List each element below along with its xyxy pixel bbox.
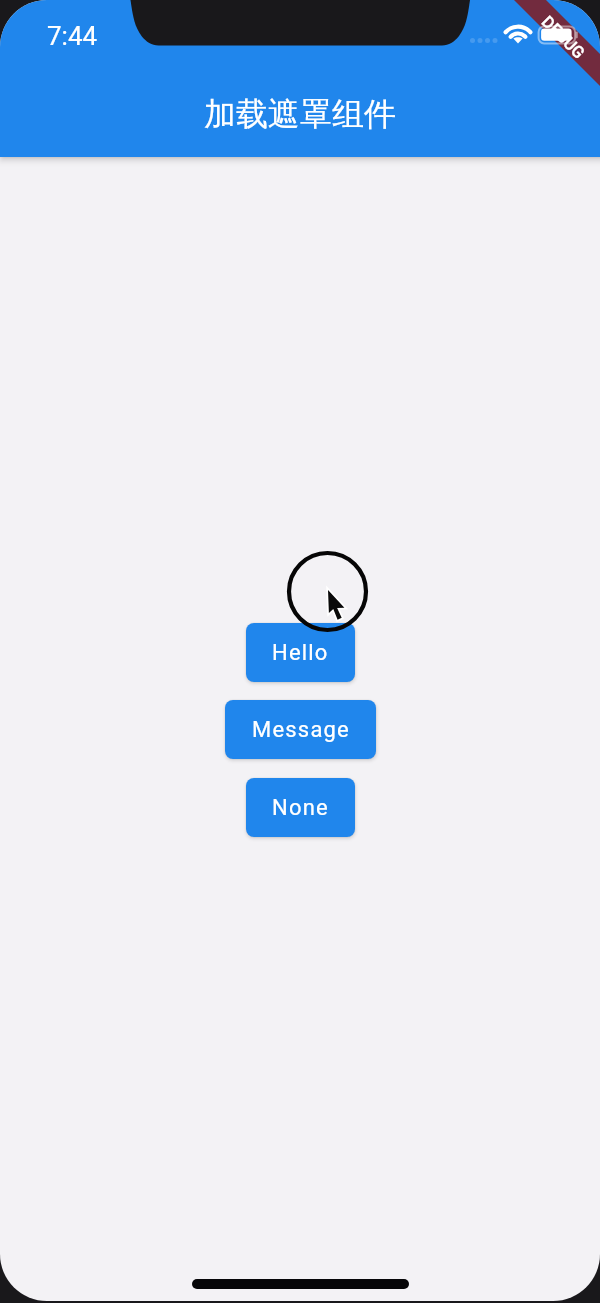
staticText: DEBUG xyxy=(538,12,589,63)
button[interactable]: None xyxy=(246,778,355,837)
staticText: 加载遮罩组件 xyxy=(204,94,396,134)
staticText: Message xyxy=(252,717,350,743)
other: Battery xyxy=(536,24,580,46)
staticText: Hello xyxy=(272,640,329,666)
staticText: 7:44 xyxy=(47,21,98,51)
button[interactable]: Hello xyxy=(246,623,355,682)
staticText: None xyxy=(272,795,329,821)
button[interactable]: Message xyxy=(225,700,376,759)
other: Wi-Fi xyxy=(505,22,531,44)
